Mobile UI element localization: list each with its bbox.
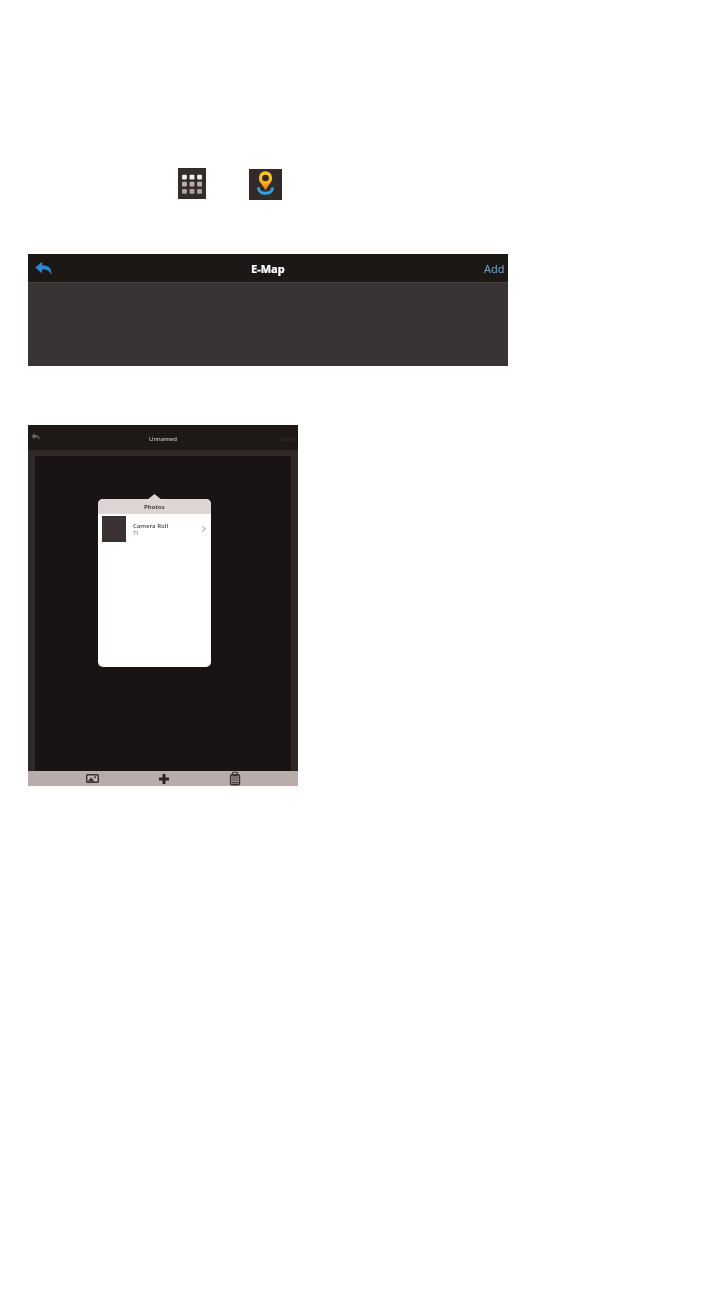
button[interactable]: Delete xyxy=(223,771,247,786)
button[interactable]: E-Map app xyxy=(249,169,282,200)
staticText: E-Map xyxy=(251,261,285,276)
staticText: 71 xyxy=(133,530,139,537)
button[interactable]: Back xyxy=(30,254,56,282)
button[interactable]: Photos xyxy=(80,771,104,786)
staticText: Add xyxy=(484,261,505,276)
button[interactable]: Camera Roll xyxy=(98,514,211,542)
button[interactable]: Add xyxy=(476,254,508,282)
staticText: Save xyxy=(281,435,295,443)
button[interactable]: All apps xyxy=(178,168,206,199)
button[interactable]: Back xyxy=(28,425,43,447)
button[interactable]: Save xyxy=(278,425,298,450)
staticText: Camera Roll xyxy=(133,522,169,530)
staticText: Photos xyxy=(144,503,165,511)
staticText: Unnamed xyxy=(149,435,177,443)
button[interactable]: Add xyxy=(152,771,176,786)
